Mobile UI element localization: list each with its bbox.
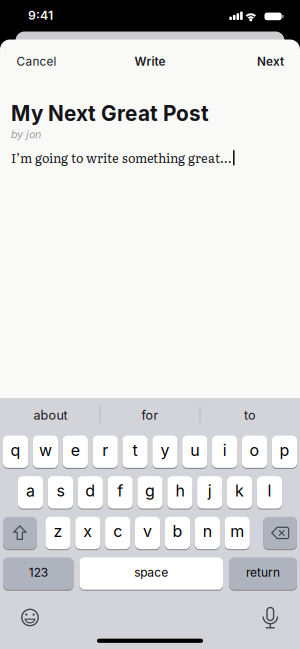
staticText: f bbox=[117, 481, 123, 500]
staticText: for bbox=[141, 408, 158, 423]
staticText: n bbox=[203, 522, 212, 541]
staticText: 123 bbox=[29, 565, 48, 580]
staticText: u bbox=[190, 440, 199, 460]
staticText: space bbox=[134, 565, 168, 580]
staticText: x bbox=[83, 522, 92, 541]
staticText: s bbox=[56, 481, 64, 500]
staticText: p bbox=[279, 440, 289, 460]
staticText: d bbox=[85, 481, 95, 500]
staticText: Cancel bbox=[16, 54, 56, 69]
staticText: to bbox=[244, 408, 256, 423]
staticText: Write bbox=[134, 54, 165, 69]
staticText: j bbox=[208, 481, 212, 500]
staticText: g bbox=[145, 481, 155, 500]
staticText: o bbox=[249, 440, 259, 460]
staticText: a bbox=[26, 481, 35, 500]
staticText: r bbox=[102, 440, 108, 460]
staticText: l bbox=[267, 481, 271, 500]
staticText: m bbox=[230, 522, 244, 541]
staticText: k bbox=[235, 481, 244, 500]
staticText: w bbox=[39, 440, 52, 460]
staticText: v bbox=[143, 522, 152, 541]
staticText: 9:41 bbox=[28, 8, 53, 23]
staticText: I’m going to write something great… bbox=[11, 149, 232, 167]
staticText: z bbox=[53, 522, 62, 541]
staticText: h bbox=[175, 481, 184, 500]
staticText: about bbox=[33, 408, 67, 423]
staticText: q bbox=[11, 440, 21, 460]
staticText: return bbox=[246, 565, 280, 580]
staticText: i bbox=[223, 440, 227, 460]
staticText: Next bbox=[257, 54, 284, 69]
staticText: My Next Great Post bbox=[11, 101, 209, 126]
staticText: by jon bbox=[11, 128, 41, 141]
staticText: c bbox=[113, 522, 122, 541]
staticText: e bbox=[71, 440, 80, 460]
staticText: y bbox=[160, 440, 169, 460]
staticText: t bbox=[133, 440, 138, 460]
staticText: b bbox=[172, 522, 182, 541]
